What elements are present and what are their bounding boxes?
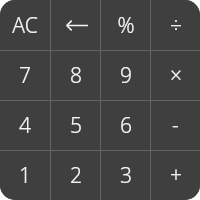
button[interactable]: 9: [101, 51, 150, 100]
button[interactable]: 8: [51, 51, 100, 100]
staticText: 5: [70, 111, 82, 140]
staticText: 1: [19, 161, 31, 190]
staticText: +: [170, 161, 182, 190]
staticText: 3: [120, 161, 132, 190]
staticText: 2: [70, 161, 82, 190]
staticText: ×: [170, 61, 182, 90]
staticText: 6: [120, 111, 132, 140]
staticText: %: [117, 11, 135, 40]
button[interactable]: AC: [0, 0, 50, 50]
staticText: -: [172, 111, 179, 140]
staticText: ÷: [170, 11, 182, 40]
staticText: 4: [19, 111, 31, 140]
staticText: 8: [70, 61, 82, 90]
staticText: AC: [12, 11, 38, 40]
button[interactable]: 5: [51, 101, 100, 150]
button[interactable]: 2: [51, 151, 100, 200]
button[interactable]: %: [101, 0, 150, 50]
button[interactable]: ×: [151, 51, 200, 100]
button[interactable]: 7: [0, 51, 50, 100]
button[interactable]: 3: [101, 151, 150, 200]
staticText: 7: [19, 61, 31, 90]
button[interactable]: 1: [0, 151, 50, 200]
staticText: 9: [120, 61, 132, 90]
button[interactable]: 4: [0, 101, 50, 150]
button[interactable]: 6: [101, 101, 150, 150]
button[interactable]: Backspace: [51, 0, 100, 50]
button[interactable]: +: [151, 151, 200, 200]
button[interactable]: -: [151, 101, 200, 150]
button[interactable]: ÷: [151, 0, 200, 50]
